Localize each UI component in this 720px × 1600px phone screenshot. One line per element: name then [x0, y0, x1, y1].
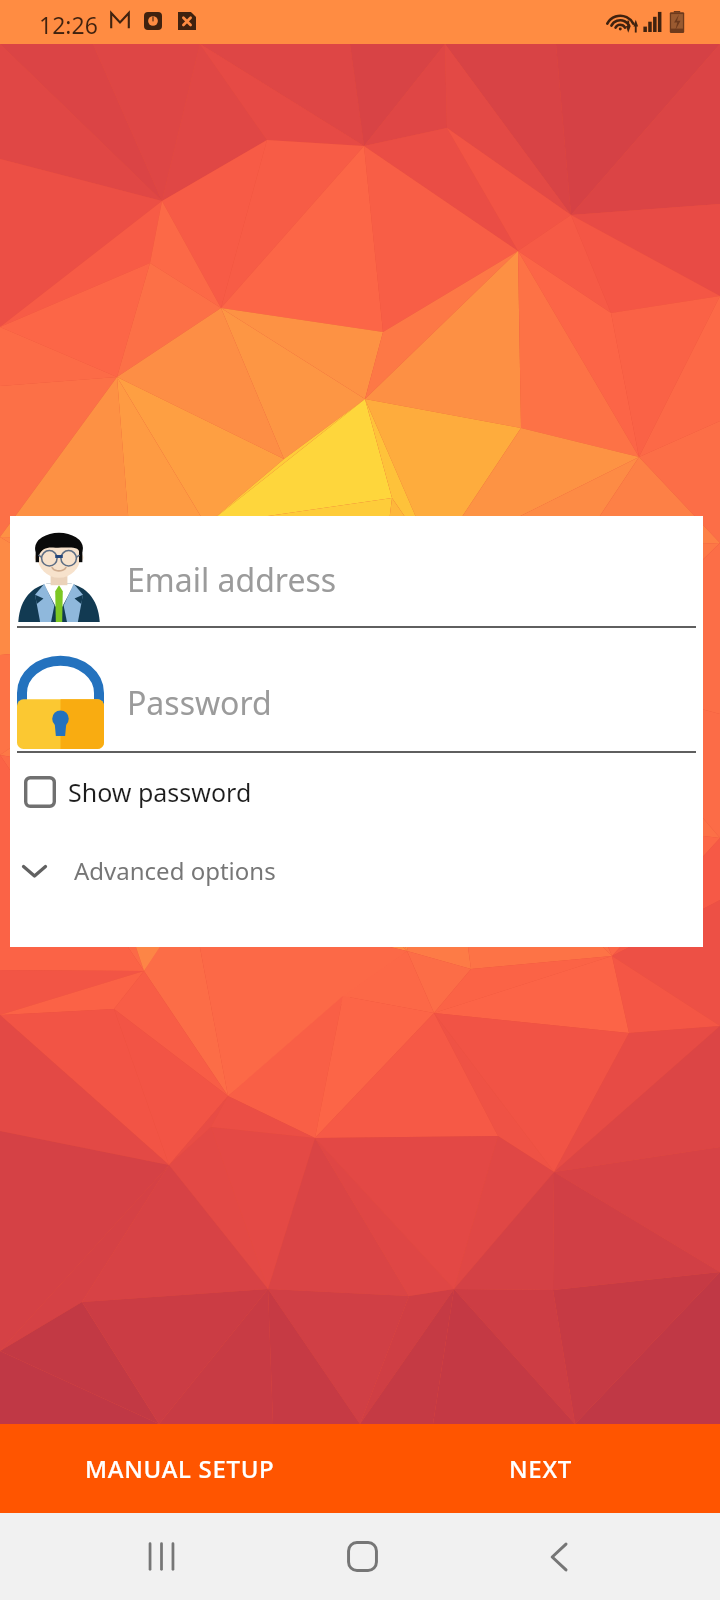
staticText: Password	[127, 681, 272, 725]
staticText: NEXT	[509, 1452, 572, 1485]
staticText: Advanced options	[74, 854, 276, 887]
button[interactable]: Advanced options	[10, 835, 703, 905]
staticText: MANUAL SETUP	[85, 1452, 275, 1485]
button[interactable]: Back	[500, 1513, 620, 1600]
button[interactable]: Email address	[10, 516, 703, 628]
staticText: Show password	[68, 775, 252, 809]
staticText: Email address	[127, 558, 337, 602]
button[interactable]: MANUAL SETUP	[0, 1424, 360, 1513]
button[interactable]: Home	[302, 1513, 422, 1600]
button[interactable]: Password	[10, 628, 703, 752]
button[interactable]: NEXT	[360, 1424, 720, 1513]
staticText: 12:26	[39, 9, 98, 40]
button[interactable]: Show password	[10, 761, 703, 823]
button[interactable]: Recent apps	[101, 1513, 221, 1600]
